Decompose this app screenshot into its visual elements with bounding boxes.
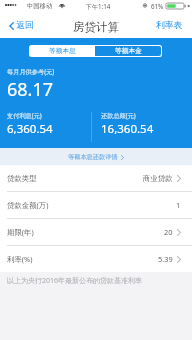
- staticText: 20: [164, 227, 173, 237]
- staticText: 支付利息(元): [7, 111, 42, 119]
- staticText: 68.17: [7, 77, 54, 102]
- staticText: 中国移动: [27, 2, 53, 10]
- staticText: 16,360.54: [101, 121, 154, 137]
- staticText: 等额本金: [115, 47, 142, 55]
- staticText: 利率(%): [7, 254, 33, 264]
- button[interactable]: 利率表: [148, 13, 192, 38]
- staticText: 期限(年): [7, 227, 34, 237]
- staticText: 下午1:14: [2, 2, 192, 10]
- staticText: 等额本息还款详情: [68, 153, 118, 161]
- button[interactable]: 贷款类型: [0, 165, 192, 191]
- staticText: 贷款金额(万): [7, 200, 49, 210]
- staticText: 等额本息: [49, 47, 76, 55]
- staticText: 商业贷款: [143, 174, 173, 183]
- button[interactable]: 等额本息还款详情: [0, 148, 192, 165]
- staticText: 还款总额(元): [101, 111, 136, 119]
- staticText: 5.39: [158, 254, 173, 264]
- staticText: 61%: [151, 2, 164, 10]
- staticText: 利率表: [156, 20, 183, 31]
- button[interactable]: 等额本金: [95, 46, 161, 56]
- button[interactable]: 贷款金额(万): [0, 192, 192, 218]
- button[interactable]: 返回: [0, 13, 48, 38]
- button[interactable]: 期限(年): [0, 219, 192, 245]
- staticText: 每月月供参考(元): [7, 67, 55, 75]
- button[interactable]: 等额本息: [30, 46, 95, 56]
- staticText: 以上为央行2016年最新公布的贷款基准利率: [7, 276, 143, 286]
- staticText: 6,360.54: [7, 121, 53, 137]
- staticText: 贷款类型: [7, 174, 37, 183]
- button[interactable]: 利率(%): [0, 246, 192, 272]
- staticText: 返回: [16, 20, 34, 31]
- staticText: 房贷计算: [0, 20, 192, 34]
- staticText: 1: [176, 200, 181, 210]
